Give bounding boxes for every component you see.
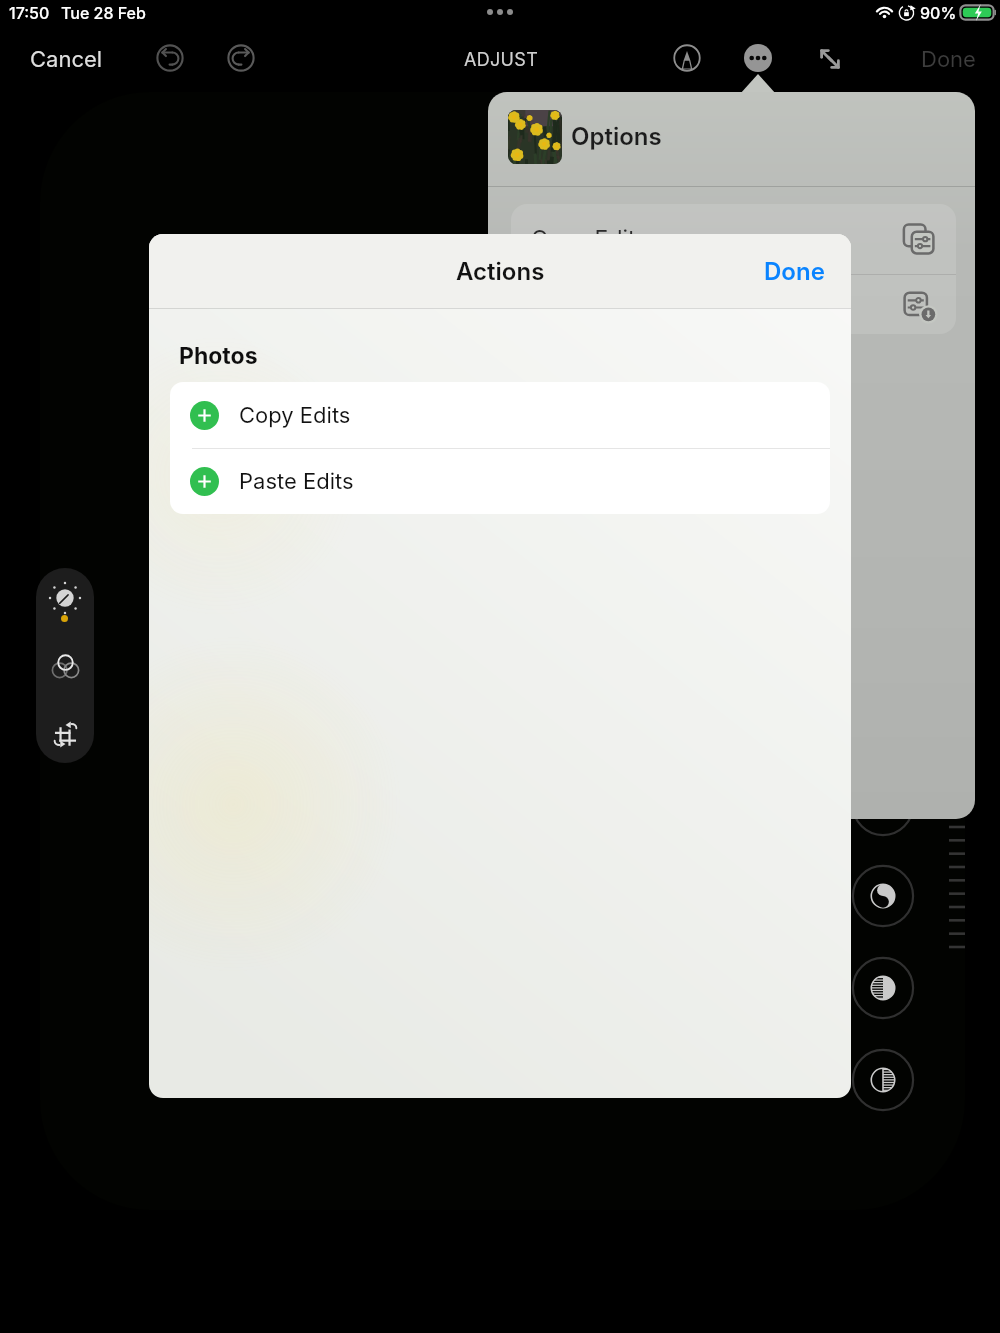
staticText: ADJUST xyxy=(464,49,539,71)
button[interactable]: Paste Edits xyxy=(170,449,830,514)
button[interactable]: Redo xyxy=(219,36,263,80)
staticText: Actions xyxy=(456,257,545,286)
button[interactable]: Filter 4 xyxy=(851,1048,915,1112)
button[interactable]: Filter 1 xyxy=(851,773,915,837)
button[interactable]: Copy Edits xyxy=(511,204,956,274)
button[interactable]: Paste Edits xyxy=(511,275,956,334)
staticText: Paste Edits xyxy=(239,468,354,495)
button[interactable]: Done xyxy=(758,251,831,292)
staticText: Copy Edits xyxy=(531,225,648,253)
button[interactable]: More options xyxy=(744,44,772,72)
button[interactable]: Cancel xyxy=(24,40,109,79)
staticText: Copy Edits xyxy=(239,402,351,429)
button[interactable]: Done xyxy=(915,40,982,79)
staticText: Paste Edits xyxy=(531,291,651,319)
staticText: 90% xyxy=(920,3,957,22)
button[interactable]: Filters xyxy=(36,636,94,694)
staticText: Done xyxy=(764,257,825,286)
button[interactable]: Crop and rotate xyxy=(36,705,94,763)
staticText: Photos xyxy=(179,342,258,370)
button[interactable]: Filter 3 xyxy=(851,956,915,1020)
button[interactable]: Undo xyxy=(148,36,192,80)
button[interactable]: Markup xyxy=(665,36,709,80)
staticText: 17:50 xyxy=(9,3,50,22)
button[interactable]: Copy Edits xyxy=(170,382,830,448)
button[interactable]: Expand xyxy=(808,37,852,81)
staticText: Tue 28 Feb xyxy=(61,3,146,22)
staticText: Done xyxy=(921,46,976,73)
button[interactable]: Filter 2 xyxy=(851,864,915,928)
staticText: Cancel xyxy=(30,46,103,73)
staticText: Options xyxy=(571,122,662,151)
button[interactable]: Adjust xyxy=(36,569,94,627)
